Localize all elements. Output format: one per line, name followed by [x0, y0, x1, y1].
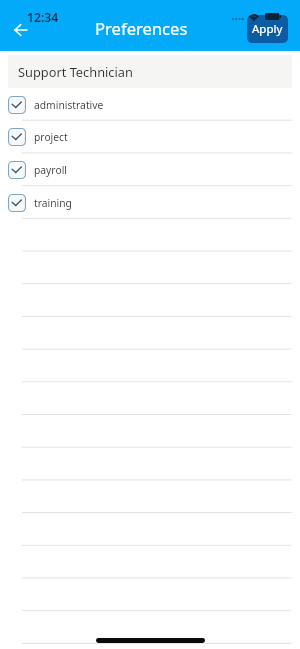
button[interactable]: project: [0, 120, 300, 153]
button[interactable]: administrative: [0, 88, 300, 121]
staticText: Apply: [252, 21, 283, 37]
button[interactable]: training: [0, 186, 300, 219]
staticText: Preferences: [95, 17, 188, 40]
staticText: 12:34: [27, 9, 59, 26]
staticText: payroll: [34, 163, 67, 177]
staticText: project: [34, 130, 68, 144]
button[interactable]: Back: [6, 15, 35, 44]
staticText: Support Technician: [18, 63, 133, 80]
staticText: training: [34, 196, 72, 210]
button[interactable]: payroll: [0, 153, 300, 186]
staticText: administrative: [34, 98, 104, 112]
button[interactable]: Apply: [247, 15, 288, 43]
